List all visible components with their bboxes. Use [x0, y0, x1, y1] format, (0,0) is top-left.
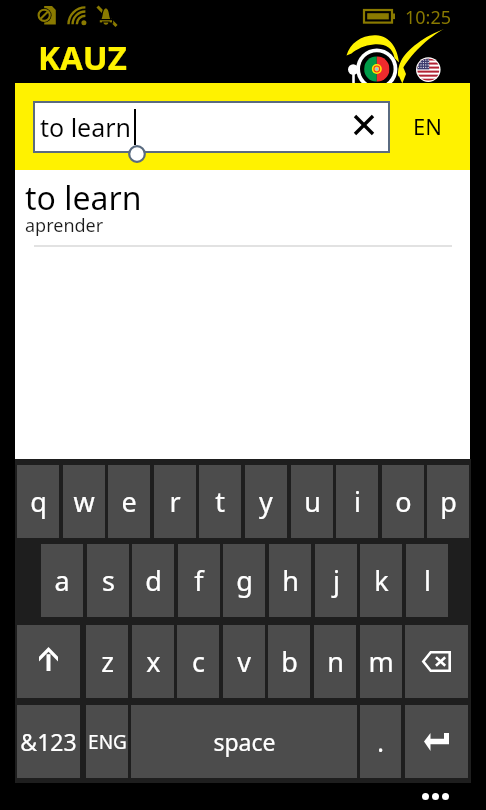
- staticText: i: [354, 483, 361, 520]
- staticText: r: [169, 483, 181, 520]
- button[interactable]: ENG: [86, 705, 128, 778]
- staticText: aprender: [25, 213, 104, 238]
- button[interactable]: z: [86, 625, 128, 698]
- staticText: s: [102, 562, 115, 599]
- staticText: f: [194, 562, 204, 599]
- button[interactable]: y: [245, 465, 287, 538]
- staticText: EN: [413, 111, 442, 141]
- button[interactable]: Clear: [342, 101, 390, 148]
- button[interactable]: &123: [17, 705, 80, 778]
- staticText: to learn: [25, 176, 142, 220]
- button[interactable]: r: [154, 465, 196, 538]
- staticText: v: [237, 643, 251, 680]
- staticText: .: [377, 725, 384, 759]
- staticText: l: [424, 562, 431, 599]
- staticText: x: [146, 643, 161, 680]
- staticText: space: [213, 726, 276, 757]
- staticText: o: [395, 483, 412, 520]
- button[interactable]: j: [315, 544, 357, 617]
- staticText: h: [282, 562, 299, 599]
- button[interactable]: p: [427, 465, 469, 538]
- staticText: u: [304, 483, 321, 520]
- button[interactable]: c: [177, 625, 219, 698]
- staticText: j: [333, 562, 340, 599]
- staticText: n: [327, 643, 344, 680]
- staticText: a: [54, 562, 70, 599]
- button[interactable]: l: [406, 544, 448, 617]
- staticText: t: [215, 483, 225, 520]
- staticText: k: [374, 562, 389, 599]
- button[interactable]: q: [17, 465, 59, 538]
- button[interactable]: d: [132, 544, 174, 617]
- staticText: 10:25: [405, 5, 452, 30]
- staticText: to learn: [40, 110, 132, 144]
- staticText: z: [101, 643, 114, 680]
- button[interactable]: Shift: [17, 625, 80, 698]
- button[interactable]: x: [132, 625, 174, 698]
- button[interactable]: More options: [418, 784, 458, 808]
- button[interactable]: e: [108, 465, 150, 538]
- staticText: KAUZ: [38, 35, 127, 80]
- button[interactable]: Enter: [405, 705, 468, 778]
- staticText: c: [192, 643, 205, 680]
- button[interactable]: KAUZ: [38, 35, 127, 80]
- staticText: y: [259, 483, 273, 520]
- staticText: d: [145, 562, 162, 599]
- button[interactable]: k: [360, 544, 402, 617]
- button[interactable]: o: [382, 465, 424, 538]
- button[interactable]: b: [268, 625, 310, 698]
- button[interactable]: .: [360, 705, 401, 778]
- button[interactable]: a: [41, 544, 83, 617]
- button[interactable]: m: [360, 625, 402, 698]
- button[interactable]: f: [178, 544, 220, 617]
- button[interactable]: w: [63, 465, 105, 538]
- staticText: ENG: [88, 729, 127, 755]
- staticText: g: [236, 562, 253, 599]
- button[interactable]: space: [131, 705, 357, 778]
- staticText: w: [73, 483, 95, 520]
- staticText: q: [30, 483, 47, 520]
- button[interactable]: n: [314, 625, 356, 698]
- button[interactable]: u: [291, 465, 333, 538]
- button[interactable]: t: [199, 465, 241, 538]
- staticText: e: [121, 483, 137, 520]
- button[interactable]: Backspace: [405, 625, 468, 698]
- button[interactable]: to learn: [15, 170, 470, 250]
- staticText: p: [440, 483, 457, 520]
- staticText: b: [281, 643, 298, 680]
- button[interactable]: h: [269, 544, 311, 617]
- button[interactable]: EN: [403, 105, 451, 147]
- button[interactable]: to learn: [33, 101, 390, 153]
- staticText: &123: [20, 726, 77, 757]
- button[interactable]: s: [87, 544, 129, 617]
- button[interactable]: v: [223, 625, 265, 698]
- button[interactable]: i: [336, 465, 378, 538]
- staticText: m: [368, 643, 394, 680]
- button[interactable]: g: [223, 544, 265, 617]
